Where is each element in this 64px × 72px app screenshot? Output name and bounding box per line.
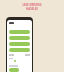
button[interactable]	[7, 20, 28, 24]
button[interactable]: Continue	[7, 20, 17, 24]
staticText: LESS DRIVING HASSLES	[22, 3, 42, 11]
button[interactable]: Menu	[7, 20, 12, 22]
button[interactable]	[7, 20, 28, 24]
button[interactable]	[7, 20, 28, 24]
button[interactable]	[7, 20, 28, 24]
